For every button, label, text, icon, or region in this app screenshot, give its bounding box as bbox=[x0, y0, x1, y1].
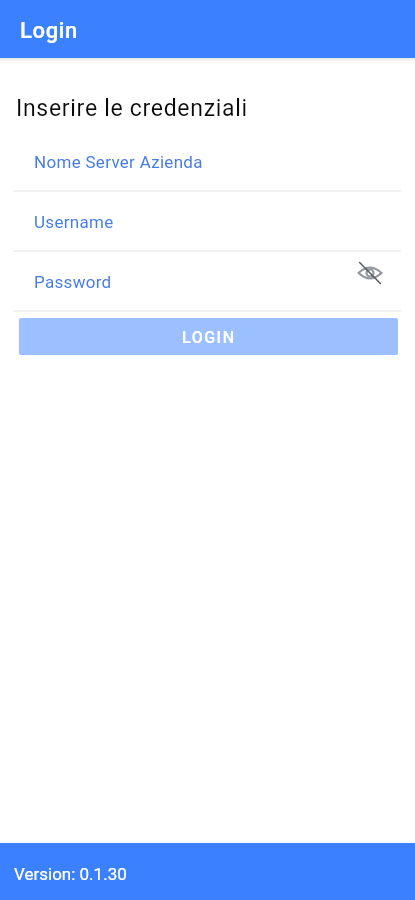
button[interactable]: Username bbox=[0, 192, 415, 252]
staticText: Username bbox=[34, 212, 114, 232]
staticText: LOGIN bbox=[182, 328, 236, 347]
button[interactable]: Password bbox=[0, 252, 415, 312]
button[interactable]: Nome Server Azienda bbox=[0, 132, 415, 192]
staticText: Version: 0.1.30 bbox=[14, 864, 127, 884]
staticText: Password bbox=[34, 272, 112, 292]
button[interactable]: Show password bbox=[353, 256, 387, 290]
staticText: Inserire le credenziali bbox=[16, 95, 248, 122]
staticText: Login bbox=[20, 18, 78, 44]
staticText: Nome Server Azienda bbox=[34, 152, 203, 172]
button[interactable]: LOGIN bbox=[19, 318, 398, 355]
